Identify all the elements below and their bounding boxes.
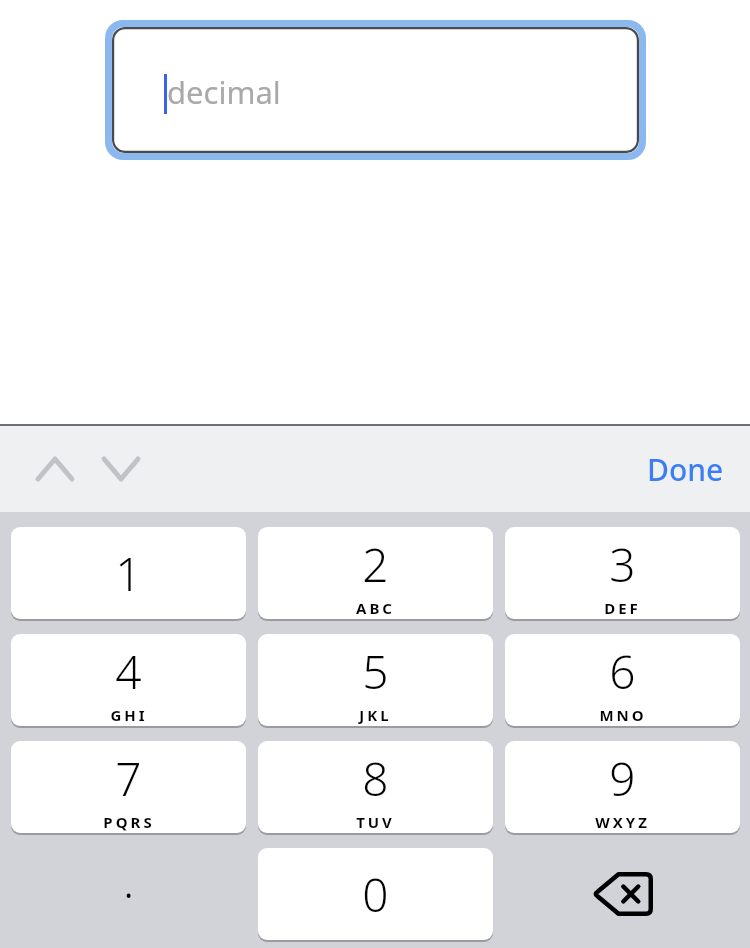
button[interactable]: 6 xyxy=(505,634,740,726)
staticText: 7 xyxy=(115,747,142,810)
button[interactable]: 9 xyxy=(505,741,740,833)
staticText: DEF xyxy=(604,598,641,618)
staticText: 2 xyxy=(362,533,389,596)
staticText: GHI xyxy=(110,705,148,725)
button[interactable]: 0 xyxy=(258,848,493,940)
button[interactable]: 3 xyxy=(505,527,740,619)
staticText: decimal xyxy=(167,71,281,113)
button[interactable]: Backspace xyxy=(505,848,740,940)
button[interactable]: 1 xyxy=(11,527,246,619)
staticText: 3 xyxy=(609,533,636,596)
button[interactable]: 7 xyxy=(11,741,246,833)
staticText: 4 xyxy=(115,640,142,703)
staticText: 1 xyxy=(115,542,142,605)
staticText: WXYZ xyxy=(595,812,650,832)
button[interactable]: Previous field xyxy=(30,444,80,494)
staticText: 6 xyxy=(609,640,636,703)
staticText: MNO xyxy=(599,705,647,725)
staticText: TUV xyxy=(356,812,395,832)
staticText: ABC xyxy=(356,598,395,618)
button[interactable]: . xyxy=(11,848,246,940)
staticText: JKL xyxy=(359,705,392,725)
button[interactable]: decimal xyxy=(105,20,646,160)
staticText: PQRS xyxy=(103,812,155,832)
staticText: . xyxy=(123,849,135,912)
staticText: 9 xyxy=(609,747,636,810)
button[interactable]: 8 xyxy=(258,741,493,833)
staticText: 0 xyxy=(362,863,389,926)
staticText: 5 xyxy=(362,640,389,703)
staticText: Done xyxy=(647,449,724,490)
button[interactable]: 4 xyxy=(11,634,246,726)
button[interactable]: Done xyxy=(635,441,736,498)
staticText: 8 xyxy=(362,747,389,810)
button[interactable]: 5 xyxy=(258,634,493,726)
button[interactable]: Next field xyxy=(96,444,146,494)
button[interactable]: 2 xyxy=(258,527,493,619)
